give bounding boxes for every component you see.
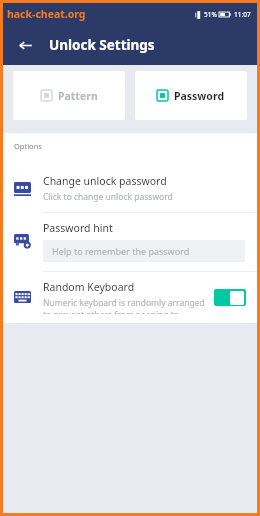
button[interactable]: Pattern: [13, 71, 125, 120]
button[interactable]: Random Keyboard: [3, 272, 257, 323]
staticText: Random Keyboard: [43, 280, 135, 294]
staticText: Options: [14, 141, 42, 151]
staticText: Password hint: [43, 221, 113, 235]
staticText: Numeric keyboard is randomly arranged to…: [43, 297, 206, 314]
button[interactable]: Back: [11, 31, 39, 59]
button[interactable]: Toggle on: [214, 289, 246, 306]
staticText: Click to change unlock password: [43, 191, 173, 203]
staticText: Password: [174, 89, 225, 103]
staticText: Pattern: [58, 89, 98, 103]
button[interactable]: Change unlock password: [3, 167, 257, 212]
staticText: Change unlock password: [43, 174, 167, 188]
staticText: hack-cheat.org: [7, 7, 86, 21]
staticText: 11:07: [234, 10, 251, 19]
staticText: Help to remember the password: [52, 245, 190, 257]
staticText: 51%: [204, 10, 217, 19]
staticText: Unlock Settings: [49, 36, 155, 54]
button[interactable]: Password: [135, 71, 247, 120]
button[interactable]: Password hint: [3, 213, 257, 271]
